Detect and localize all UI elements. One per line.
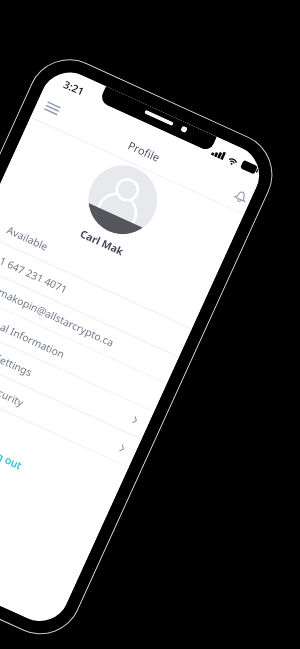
button[interactable]: +1 647 231 4071 xyxy=(0,232,192,358)
staticText: +1 647 231 4071 xyxy=(0,251,70,296)
button[interactable]: Notifications xyxy=(227,182,254,209)
button[interactable]: Menu xyxy=(39,94,65,121)
button[interactable]: Available xyxy=(0,204,205,330)
button[interactable]: Privacy & Security xyxy=(0,342,141,468)
staticText: 3:21 xyxy=(61,77,86,98)
staticText: Account Settings xyxy=(0,333,34,379)
button[interactable]: Log out xyxy=(0,433,41,483)
staticText: Personal Information xyxy=(0,306,67,361)
staticText: Log out xyxy=(0,444,25,473)
staticText: Privacy & Security xyxy=(0,361,26,409)
button[interactable]: Personal Information xyxy=(0,287,167,412)
staticText: Profile xyxy=(126,137,163,165)
button[interactable]: carlmakopin@allstarcrypto.ca xyxy=(0,259,179,384)
staticText: Available xyxy=(5,223,51,254)
staticText: carlmakopin@allstarcrypto.ca xyxy=(0,277,117,350)
staticText: Carl Mak xyxy=(78,226,126,259)
button[interactable]: Account Settings xyxy=(0,315,154,440)
